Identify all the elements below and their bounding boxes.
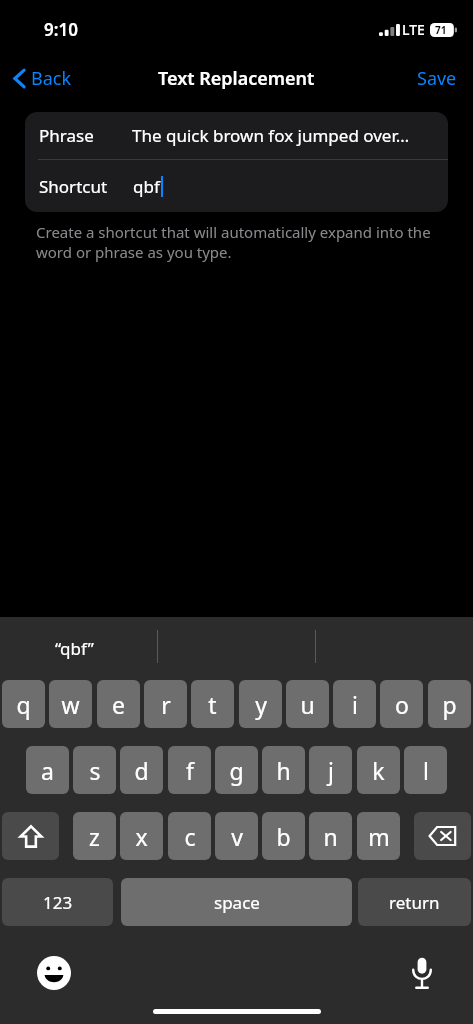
button[interactable]: Emoji keyboard [36,955,72,991]
staticText: e [112,689,125,720]
staticText: m [368,821,390,852]
button[interactable]: Phrase [25,112,448,159]
button[interactable]: j [309,746,352,794]
button[interactable]: f [168,746,211,794]
staticText: LTE [402,20,425,39]
staticText: w [61,689,80,720]
staticText: v [231,821,243,852]
staticText: y [255,689,267,720]
button[interactable]: e [97,680,140,728]
staticText: a [41,755,54,786]
staticText: n [323,821,338,852]
button[interactable]: u [286,680,329,728]
staticText: q [16,689,31,720]
button[interactable]: Save [411,60,463,97]
staticText: 71 [435,23,447,37]
staticText: l [423,755,429,786]
staticText: t [208,689,217,720]
button[interactable]: Delete [414,812,471,860]
staticText: qbf [133,175,160,198]
staticText: space [214,891,260,914]
button[interactable]: Shift [2,812,59,860]
button[interactable]: x [120,812,163,860]
staticText: Create a shortcut that will automaticall… [36,222,443,262]
staticText: h [276,755,291,786]
button[interactable]: c [168,812,211,860]
staticText: Save [417,66,457,91]
button[interactable]: Back [8,60,78,97]
staticText: return [389,891,440,914]
button[interactable]: b [262,812,305,860]
button[interactable]: Dictation [404,955,440,991]
staticText: s [89,755,101,786]
button[interactable]: y [239,680,282,728]
staticText: z [89,821,100,852]
button[interactable]: i [333,680,376,728]
button[interactable]: g [215,746,258,794]
staticText: 123 [43,891,73,914]
button[interactable]: v [215,812,258,860]
staticText: Back [31,66,72,91]
staticText: b [276,821,291,852]
staticText: f [186,755,194,786]
button[interactable]: d [120,746,163,794]
button[interactable]: q [2,680,45,728]
staticText: c [184,821,196,852]
button[interactable]: h [262,746,305,794]
staticText: p [442,689,457,720]
button[interactable]: l [404,746,447,794]
button[interactable]: 123 [2,878,113,926]
staticText: j [328,755,334,786]
staticText: d [134,755,149,786]
button[interactable]: a [26,746,69,794]
staticText: u [300,689,315,720]
staticText: Shortcut [39,175,108,198]
staticText: The quick brown fox jumped over… [132,124,410,147]
button[interactable]: space [121,878,352,926]
staticText: r [161,689,171,720]
staticText: Phrase [39,124,94,147]
staticText: o [395,689,409,720]
button[interactable]: p [428,680,471,728]
button[interactable]: t [191,680,234,728]
staticText: k [372,755,385,786]
button[interactable]: return [358,878,471,926]
staticText: Text Replacement [158,66,315,91]
button[interactable]: n [309,812,352,860]
button[interactable]: s [73,746,116,794]
staticText: g [229,755,244,786]
button[interactable]: r [144,680,187,728]
staticText: x [135,821,148,852]
button[interactable]: m [357,812,400,860]
button[interactable]: Shortcut [25,160,448,212]
staticText: i [352,689,358,720]
staticText: 9:10 [44,18,78,41]
button[interactable]: “qbf” [55,637,94,660]
button[interactable]: k [357,746,400,794]
button[interactable]: w [49,680,92,728]
button[interactable]: z [73,812,116,860]
button[interactable]: o [380,680,423,728]
